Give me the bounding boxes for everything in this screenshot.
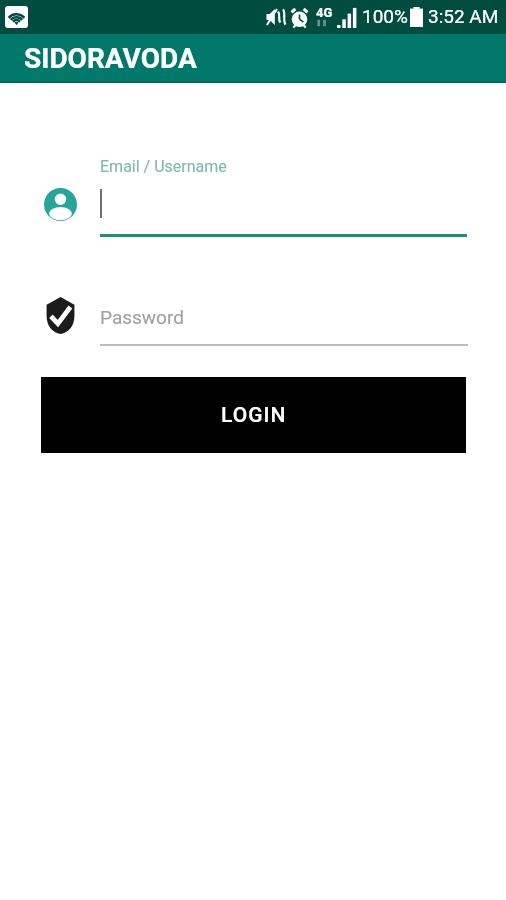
button[interactable]: LOGIN	[41, 377, 466, 453]
staticText: LOGIN	[221, 403, 287, 428]
other: Account	[44, 188, 77, 221]
staticText: Email / Username	[100, 157, 227, 176]
button[interactable]: Password secure	[41, 290, 468, 346]
staticText: 4G	[316, 5, 333, 20]
staticText: 3:52 AM	[428, 5, 499, 27]
other: Password secure	[46, 297, 75, 334]
staticText: Password	[100, 306, 184, 328]
staticText: SIDORAVODA	[24, 42, 197, 75]
staticText: 100%	[362, 5, 408, 27]
button[interactable]: Account	[41, 150, 467, 240]
